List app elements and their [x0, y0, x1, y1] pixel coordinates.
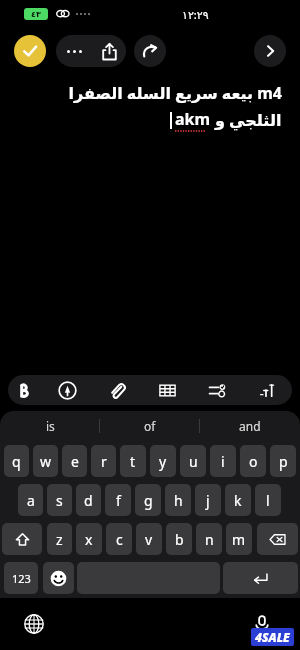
staticText: u: [189, 452, 198, 471]
staticText: d: [84, 491, 93, 510]
button[interactable]: Draw: [42, 375, 92, 405]
staticText: e: [71, 452, 79, 471]
button[interactable]: h: [165, 484, 191, 516]
staticText: g: [144, 491, 153, 510]
staticText: n: [205, 530, 214, 549]
button[interactable]: l: [255, 484, 281, 516]
button[interactable]: q: [4, 445, 29, 477]
button[interactable]: Voice input: [248, 610, 276, 638]
staticText: b: [175, 530, 184, 549]
button[interactable]: Next: [254, 35, 286, 67]
staticText: ٤٣: [31, 10, 41, 19]
staticText: o: [249, 452, 258, 471]
staticText: p: [279, 452, 288, 471]
staticText: x: [85, 530, 93, 549]
staticText: i: [221, 452, 225, 471]
button[interactable]: Bold: [8, 375, 42, 405]
button[interactable]: m: [226, 523, 252, 555]
staticText: z: [56, 530, 63, 549]
button[interactable]: c: [106, 523, 132, 555]
button[interactable]: Redo: [134, 35, 166, 67]
button[interactable]: Emoji: [43, 562, 74, 594]
staticText: f: [116, 491, 121, 510]
staticText: akm: [175, 108, 211, 130]
staticText: of: [144, 418, 156, 434]
button[interactable]: e: [62, 445, 87, 477]
staticText: and: [239, 418, 261, 434]
button[interactable]: More options: [56, 35, 92, 67]
button[interactable]: d: [76, 484, 101, 516]
staticText: 123: [12, 571, 31, 586]
button[interactable]: Shift: [2, 523, 42, 555]
button[interactable]: Done: [14, 35, 46, 67]
button[interactable]: and: [200, 411, 300, 441]
button[interactable]: a: [18, 484, 43, 516]
staticText: a: [27, 491, 35, 510]
button[interactable]: p: [270, 445, 296, 477]
staticText: بيعه سريع السله الصفرا m4: [68, 82, 282, 104]
button[interactable]: x: [76, 523, 102, 555]
button[interactable]: Backspace: [257, 523, 298, 555]
staticText: ١٢:٢٩: [182, 7, 209, 22]
staticText: m: [232, 530, 246, 549]
button[interactable]: n: [196, 523, 222, 555]
button[interactable]: o: [240, 445, 266, 477]
button[interactable]: 123: [4, 562, 38, 594]
staticText: t: [130, 452, 136, 471]
button[interactable]: Text format: [242, 375, 292, 405]
button[interactable]: b: [166, 523, 192, 555]
button[interactable]: g: [135, 484, 161, 516]
staticText: الثلجي و: [215, 109, 282, 131]
staticText: 4SALE: [255, 629, 290, 645]
staticText: is: [46, 418, 55, 434]
button[interactable]: v: [136, 523, 162, 555]
staticText: w: [40, 452, 52, 471]
button[interactable]: k: [225, 484, 251, 516]
button[interactable]: s: [47, 484, 72, 516]
button[interactable]: Share: [92, 35, 126, 67]
button[interactable]: y: [150, 445, 176, 477]
button[interactable]: f: [105, 484, 131, 516]
button[interactable]: w: [33, 445, 58, 477]
button[interactable]: j: [195, 484, 221, 516]
button[interactable]: is: [0, 411, 100, 441]
staticText: l: [266, 491, 270, 510]
staticText: j: [206, 491, 210, 510]
button[interactable]: r: [91, 445, 116, 477]
button[interactable]: i: [210, 445, 236, 477]
staticText: y: [159, 452, 167, 471]
staticText: k: [234, 491, 242, 510]
button[interactable]: Return: [223, 562, 298, 594]
staticText: h: [174, 491, 183, 510]
staticText: r: [101, 452, 107, 471]
button[interactable]: Checklist: [192, 375, 242, 405]
button[interactable]: Change language: [20, 610, 48, 638]
button[interactable]: Attach: [92, 375, 142, 405]
staticText: s: [56, 491, 63, 510]
button[interactable]: of: [100, 411, 200, 441]
staticText: v: [145, 530, 153, 549]
staticText: q: [12, 452, 21, 471]
button[interactable]: Table: [142, 375, 192, 405]
button[interactable]: u: [180, 445, 206, 477]
button[interactable]: t: [120, 445, 146, 477]
button[interactable]: z: [47, 523, 72, 555]
staticText: c: [116, 530, 123, 549]
